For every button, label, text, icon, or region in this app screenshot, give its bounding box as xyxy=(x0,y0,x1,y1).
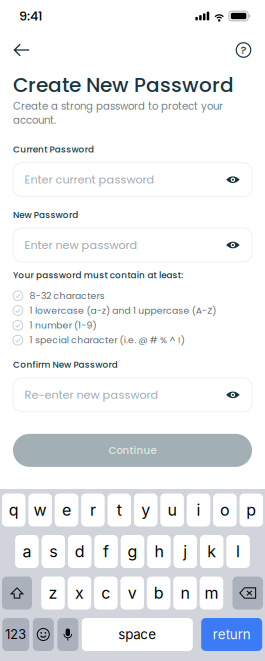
staticText: f xyxy=(103,542,109,561)
button[interactable]: Help xyxy=(235,42,251,58)
staticText: e xyxy=(62,500,71,520)
staticText: t xyxy=(117,500,122,520)
staticText: k xyxy=(207,542,216,561)
button[interactable]: g xyxy=(121,535,144,568)
button[interactable]: o xyxy=(213,493,237,526)
staticText: o xyxy=(220,500,230,520)
staticText: w xyxy=(34,500,47,520)
staticText: 9:41 xyxy=(19,7,42,25)
button[interactable]: return xyxy=(201,618,262,651)
button[interactable]: p xyxy=(240,493,263,526)
staticText: b xyxy=(154,583,164,603)
staticText: Enter current password xyxy=(24,172,154,188)
button[interactable]: Emoji xyxy=(33,618,54,651)
button[interactable]: space xyxy=(82,618,193,651)
staticText: u xyxy=(168,500,177,520)
staticText: 1 special character (i.e. @ # % ^ !) xyxy=(30,334,185,347)
button[interactable]: f xyxy=(94,535,118,568)
staticText: q xyxy=(9,500,19,520)
button[interactable]: y xyxy=(134,493,157,526)
button[interactable]: z xyxy=(41,576,65,609)
staticText: return xyxy=(213,626,251,642)
button[interactable]: j xyxy=(174,535,197,568)
staticText: Continue xyxy=(108,443,156,457)
button[interactable]: r xyxy=(81,493,105,526)
button[interactable]: m xyxy=(200,576,223,609)
button[interactable]: Enter current password xyxy=(13,163,252,197)
staticText: space xyxy=(118,626,156,642)
staticText: c xyxy=(101,583,110,603)
button[interactable]: n xyxy=(173,576,197,609)
staticText: Re-enter new password xyxy=(24,387,158,403)
staticText: i xyxy=(196,500,200,520)
button[interactable]: q xyxy=(2,493,25,526)
staticText: 1 number (1-9) xyxy=(30,319,96,332)
staticText: Current Password xyxy=(13,143,94,156)
button[interactable]: h xyxy=(147,535,171,568)
button[interactable]: s xyxy=(42,535,65,568)
staticText: New Password xyxy=(13,209,78,221)
staticText: Your password must contain at least: xyxy=(13,269,183,281)
staticText: Enter new password xyxy=(24,237,137,253)
button[interactable]: Dictate xyxy=(57,618,78,651)
button[interactable]: t xyxy=(107,493,131,526)
staticText: p xyxy=(246,500,256,520)
staticText: l xyxy=(236,542,240,561)
staticText: r xyxy=(90,500,96,520)
button[interactable]: Delete xyxy=(232,576,263,609)
staticText: 1 lowercase (a-z) and 1 uppercase (A-Z) xyxy=(30,304,216,317)
staticText: Confirm New Password xyxy=(13,358,118,371)
staticText: m xyxy=(204,583,218,603)
button[interactable]: Re-enter new password xyxy=(13,378,252,412)
staticText: Create New Password xyxy=(13,71,234,99)
staticText: x xyxy=(75,583,84,603)
button[interactable]: l xyxy=(226,535,250,568)
staticText: g xyxy=(127,542,137,561)
staticText: v xyxy=(128,583,137,603)
button[interactable]: b xyxy=(147,576,170,609)
staticText: n xyxy=(181,583,190,603)
staticText: 123 xyxy=(5,627,26,642)
button[interactable]: Back xyxy=(13,42,29,58)
button[interactable]: k xyxy=(200,535,223,568)
button[interactable]: x xyxy=(68,576,91,609)
button[interactable]: 123 xyxy=(2,618,29,651)
staticText: h xyxy=(154,542,163,561)
button[interactable]: i xyxy=(187,493,210,526)
button[interactable]: d xyxy=(68,535,91,568)
button[interactable]: c xyxy=(94,576,118,609)
staticText: a xyxy=(22,542,31,561)
staticText: j xyxy=(183,542,187,561)
button[interactable]: Shift xyxy=(2,576,32,609)
staticText: d xyxy=(75,542,85,561)
staticText: s xyxy=(49,542,57,561)
button[interactable]: a xyxy=(15,535,39,568)
button[interactable]: Enter new password xyxy=(13,228,252,262)
staticText: ? xyxy=(240,42,246,58)
staticText: z xyxy=(48,583,57,603)
button[interactable]: e xyxy=(55,493,78,526)
button[interactable]: Continue xyxy=(13,434,252,467)
button[interactable]: w xyxy=(28,493,52,526)
button[interactable]: u xyxy=(160,493,184,526)
staticText: 8-32 characters xyxy=(30,289,105,302)
staticText: Create a strong password to protect your… xyxy=(13,99,223,127)
button[interactable]: v xyxy=(120,576,144,609)
staticText: y xyxy=(141,500,150,520)
